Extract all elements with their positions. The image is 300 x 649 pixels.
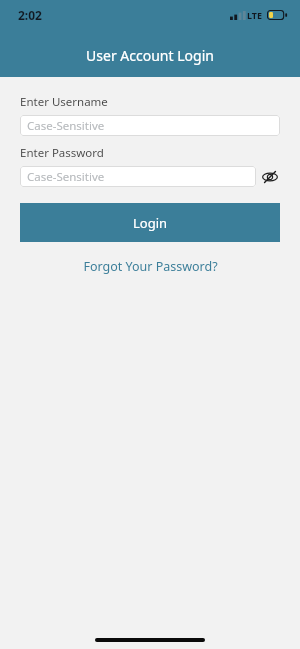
staticText: LTE (247, 9, 263, 21)
staticText: Case-Sensitive (27, 118, 105, 134)
button[interactable]: Show password (259, 166, 280, 187)
button[interactable]: Case-Sensitive (20, 166, 256, 187)
staticText: Enter Password (20, 145, 104, 161)
button[interactable]: Login (20, 203, 280, 242)
staticText: Case-Sensitive (27, 169, 105, 185)
staticText: Enter Username (20, 94, 108, 110)
button[interactable]: Case-Sensitive (20, 115, 280, 136)
staticText: User Account Login (86, 46, 214, 65)
button[interactable]: Forgot Your Password? (20, 258, 280, 275)
staticText: Login (133, 214, 168, 232)
staticText: 2:02 (18, 7, 42, 23)
staticText: Forgot Your Password? (83, 258, 218, 275)
